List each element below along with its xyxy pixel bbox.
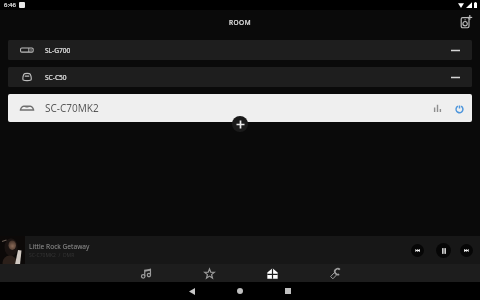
button[interactable]: Pause bbox=[436, 243, 451, 258]
button[interactable]: Settings bbox=[328, 264, 342, 282]
button[interactable]: SL-G700 bbox=[8, 40, 472, 60]
staticText: SC-C50 bbox=[45, 73, 67, 82]
button[interactable]: Music bbox=[139, 264, 153, 282]
button[interactable]: Next bbox=[460, 244, 473, 257]
staticText: 6:46 bbox=[4, 1, 16, 9]
button[interactable]: Home bbox=[225, 282, 255, 300]
staticText: SC-C70MK2 / DMR bbox=[29, 252, 75, 259]
staticText: ROOM bbox=[229, 18, 252, 27]
button[interactable]: Home bbox=[265, 264, 279, 282]
button[interactable]: Add device bbox=[456, 13, 476, 33]
button[interactable]: Add group bbox=[232, 116, 248, 132]
button[interactable]: Power bbox=[452, 101, 466, 115]
button[interactable]: Favourites bbox=[202, 264, 216, 282]
staticText: SL-G700 bbox=[45, 46, 71, 55]
button[interactable]: Previous bbox=[411, 244, 424, 257]
button[interactable]: Back bbox=[177, 282, 207, 300]
button[interactable]: Equalizer bbox=[430, 101, 444, 115]
staticText: Little Rock Getaway bbox=[29, 242, 90, 251]
button[interactable]: SC-C50 bbox=[8, 67, 472, 87]
staticText: SC-C70MK2 bbox=[45, 101, 99, 115]
button[interactable]: Recents bbox=[273, 282, 303, 300]
button[interactable]: SC-C70MK2 bbox=[8, 94, 472, 122]
